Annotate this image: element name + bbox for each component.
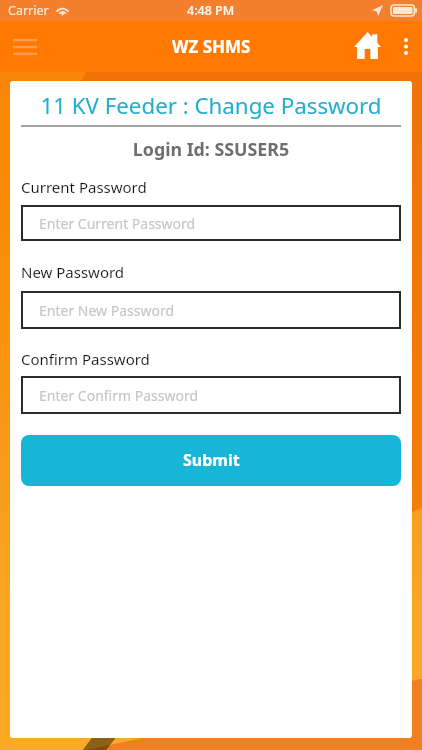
button[interactable]: Home: [345, 21, 390, 72]
staticText: Enter New Password: [39, 301, 175, 320]
staticText: 4:48 PM: [187, 2, 235, 19]
staticText: Enter Confirm Password: [39, 386, 199, 405]
button[interactable]: Enter Current Password: [21, 205, 401, 241]
button[interactable]: Enter New Password: [21, 291, 401, 329]
staticText: Current Password: [21, 177, 147, 197]
button[interactable]: Enter Confirm Password: [21, 376, 401, 414]
staticText: Confirm Password: [21, 349, 150, 369]
staticText: WZ SHMS: [172, 35, 251, 58]
button[interactable]: Submit: [21, 435, 401, 486]
staticText: Enter Current Password: [39, 214, 196, 233]
staticText: Carrier: [8, 2, 49, 19]
staticText: Login Id: SSUSER5: [10, 137, 412, 161]
staticText: Submit: [183, 449, 240, 471]
button[interactable]: Open navigation menu: [0, 21, 50, 72]
staticText: New Password: [21, 262, 125, 282]
staticText: 11 KV Feeder : Change Password: [10, 90, 412, 120]
button[interactable]: More options: [390, 21, 422, 72]
